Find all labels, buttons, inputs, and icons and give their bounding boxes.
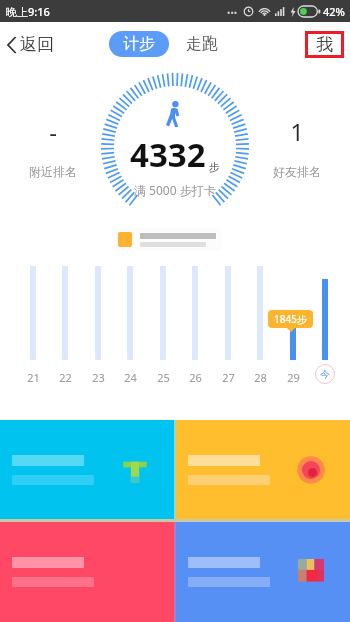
staticText: 步 xyxy=(209,160,220,174)
staticText: 25 xyxy=(157,370,170,385)
staticText: ••• xyxy=(227,6,238,18)
staticText: 24 xyxy=(124,370,137,385)
staticText: 晚上9:16 xyxy=(6,4,50,19)
button[interactable] xyxy=(0,522,174,622)
staticText: 22 xyxy=(59,370,72,385)
staticText: 4332 xyxy=(130,132,206,177)
staticText: 满 5000 步打卡 xyxy=(134,182,216,198)
staticText: 1845步 xyxy=(274,312,307,326)
staticText: 29 xyxy=(287,370,300,385)
button[interactable] xyxy=(176,522,350,622)
staticText: 走跑 xyxy=(186,34,218,54)
button[interactable]: 我 xyxy=(305,31,344,58)
staticText: 附近排名 xyxy=(29,164,77,179)
staticText: 42% xyxy=(323,4,345,19)
staticText: 返回 xyxy=(20,34,54,55)
staticText: - xyxy=(49,115,57,148)
button[interactable]: 计步 xyxy=(109,31,169,57)
button[interactable] xyxy=(0,420,174,519)
button[interactable]: 走跑 xyxy=(182,31,222,57)
staticText: 28 xyxy=(254,370,267,385)
staticText: 27 xyxy=(222,370,235,385)
staticText: 好友排名 xyxy=(273,164,321,179)
button[interactable] xyxy=(112,228,222,251)
staticText: 23 xyxy=(92,370,105,385)
button[interactable]: 返回 xyxy=(0,28,64,61)
button[interactable]: 今 xyxy=(315,364,335,384)
staticText: 1 xyxy=(290,115,304,148)
button[interactable] xyxy=(176,420,350,519)
staticText: 今 xyxy=(320,368,330,381)
staticText: 21 xyxy=(27,370,40,385)
staticText: 26 xyxy=(189,370,202,385)
staticText: 计步 xyxy=(123,34,155,54)
staticText: 我 xyxy=(316,34,333,55)
